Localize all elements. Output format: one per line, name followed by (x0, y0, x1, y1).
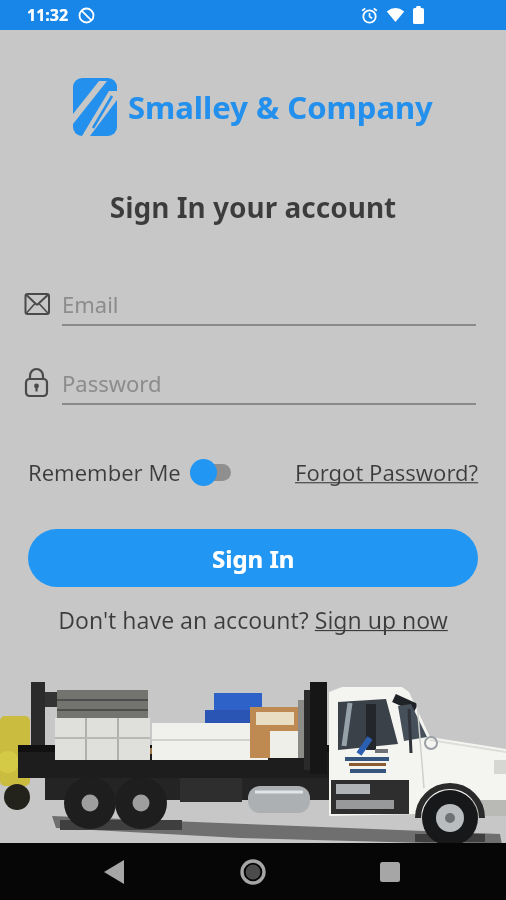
button[interactable]: Forgot Password? (295, 457, 479, 487)
staticText: Remember Me (28, 457, 181, 487)
button[interactable]: Password (25, 368, 476, 405)
staticText: Email (62, 289, 119, 319)
button[interactable] (101, 859, 127, 885)
button[interactable] (378, 860, 402, 884)
button[interactable]: Don't have an account? Sign up now (0, 604, 506, 635)
staticText: Sign In (212, 542, 295, 575)
staticText: Smalley & Company (128, 86, 433, 128)
button[interactable] (190, 459, 231, 486)
staticText: Password (62, 368, 162, 398)
staticText: Sign In your account (0, 188, 506, 226)
staticText: 11:32 (27, 4, 69, 26)
button[interactable]: Email (25, 289, 476, 326)
button[interactable]: Sign In (28, 529, 478, 587)
button[interactable] (239, 858, 267, 886)
